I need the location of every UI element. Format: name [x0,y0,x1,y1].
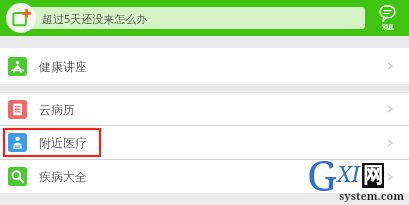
staticText: system.com [339,188,405,203]
button[interactable]: 健康讲座 [0,48,409,84]
button[interactable]: 新建 [6,3,36,33]
button[interactable]: 附近医疗 [0,126,409,159]
staticText: 云病历 [39,102,75,117]
staticText: 网 [363,163,383,188]
staticText: 消息 [382,23,394,31]
staticText: 超过5天还没来怎么办 [42,11,148,26]
button[interactable]: 疾病大全 [0,160,409,193]
staticText: 疾病大全 [39,169,87,184]
button[interactable]: 云病历 [0,93,409,125]
staticText: G [307,146,337,203]
button[interactable]: 超过5天还没来怎么办 [24,7,365,29]
button[interactable]: 消息 [365,0,409,36]
staticText: 健康讲座 [39,59,87,74]
staticText: 附近医疗 [39,135,87,150]
staticText: XI [337,158,360,188]
